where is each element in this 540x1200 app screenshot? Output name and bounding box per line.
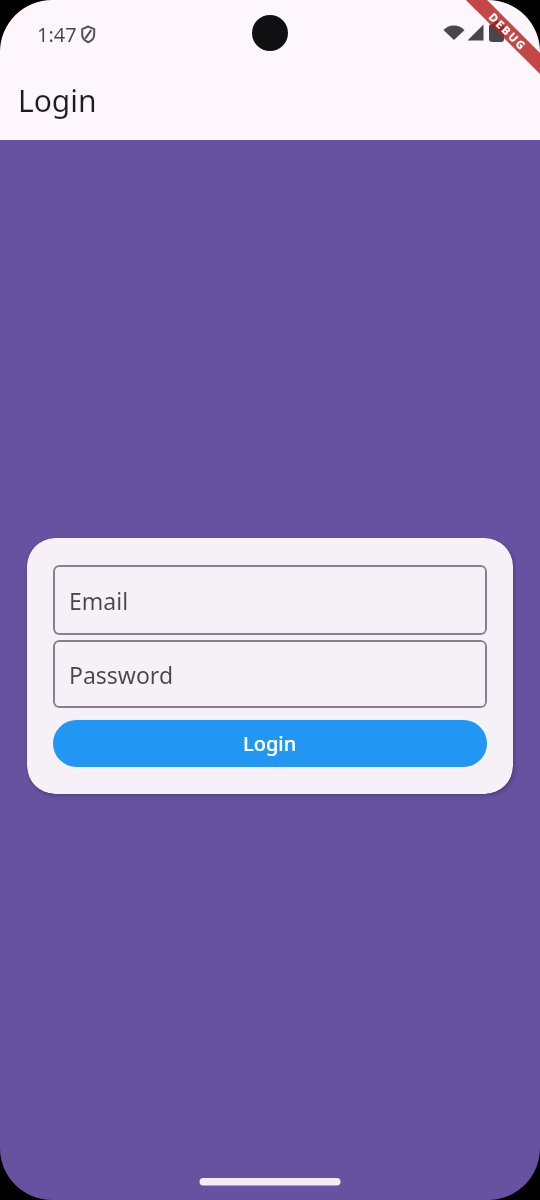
staticText: Login	[243, 730, 297, 757]
button[interactable]: Password	[53, 640, 487, 708]
staticText: DEBUG	[486, 9, 530, 54]
staticText: 1:47	[37, 21, 77, 48]
staticText: Password	[69, 659, 174, 690]
staticText: Login	[18, 80, 97, 121]
staticText: Email	[69, 585, 129, 616]
button[interactable]: Email	[53, 565, 487, 635]
button[interactable]: Login	[53, 720, 487, 767]
